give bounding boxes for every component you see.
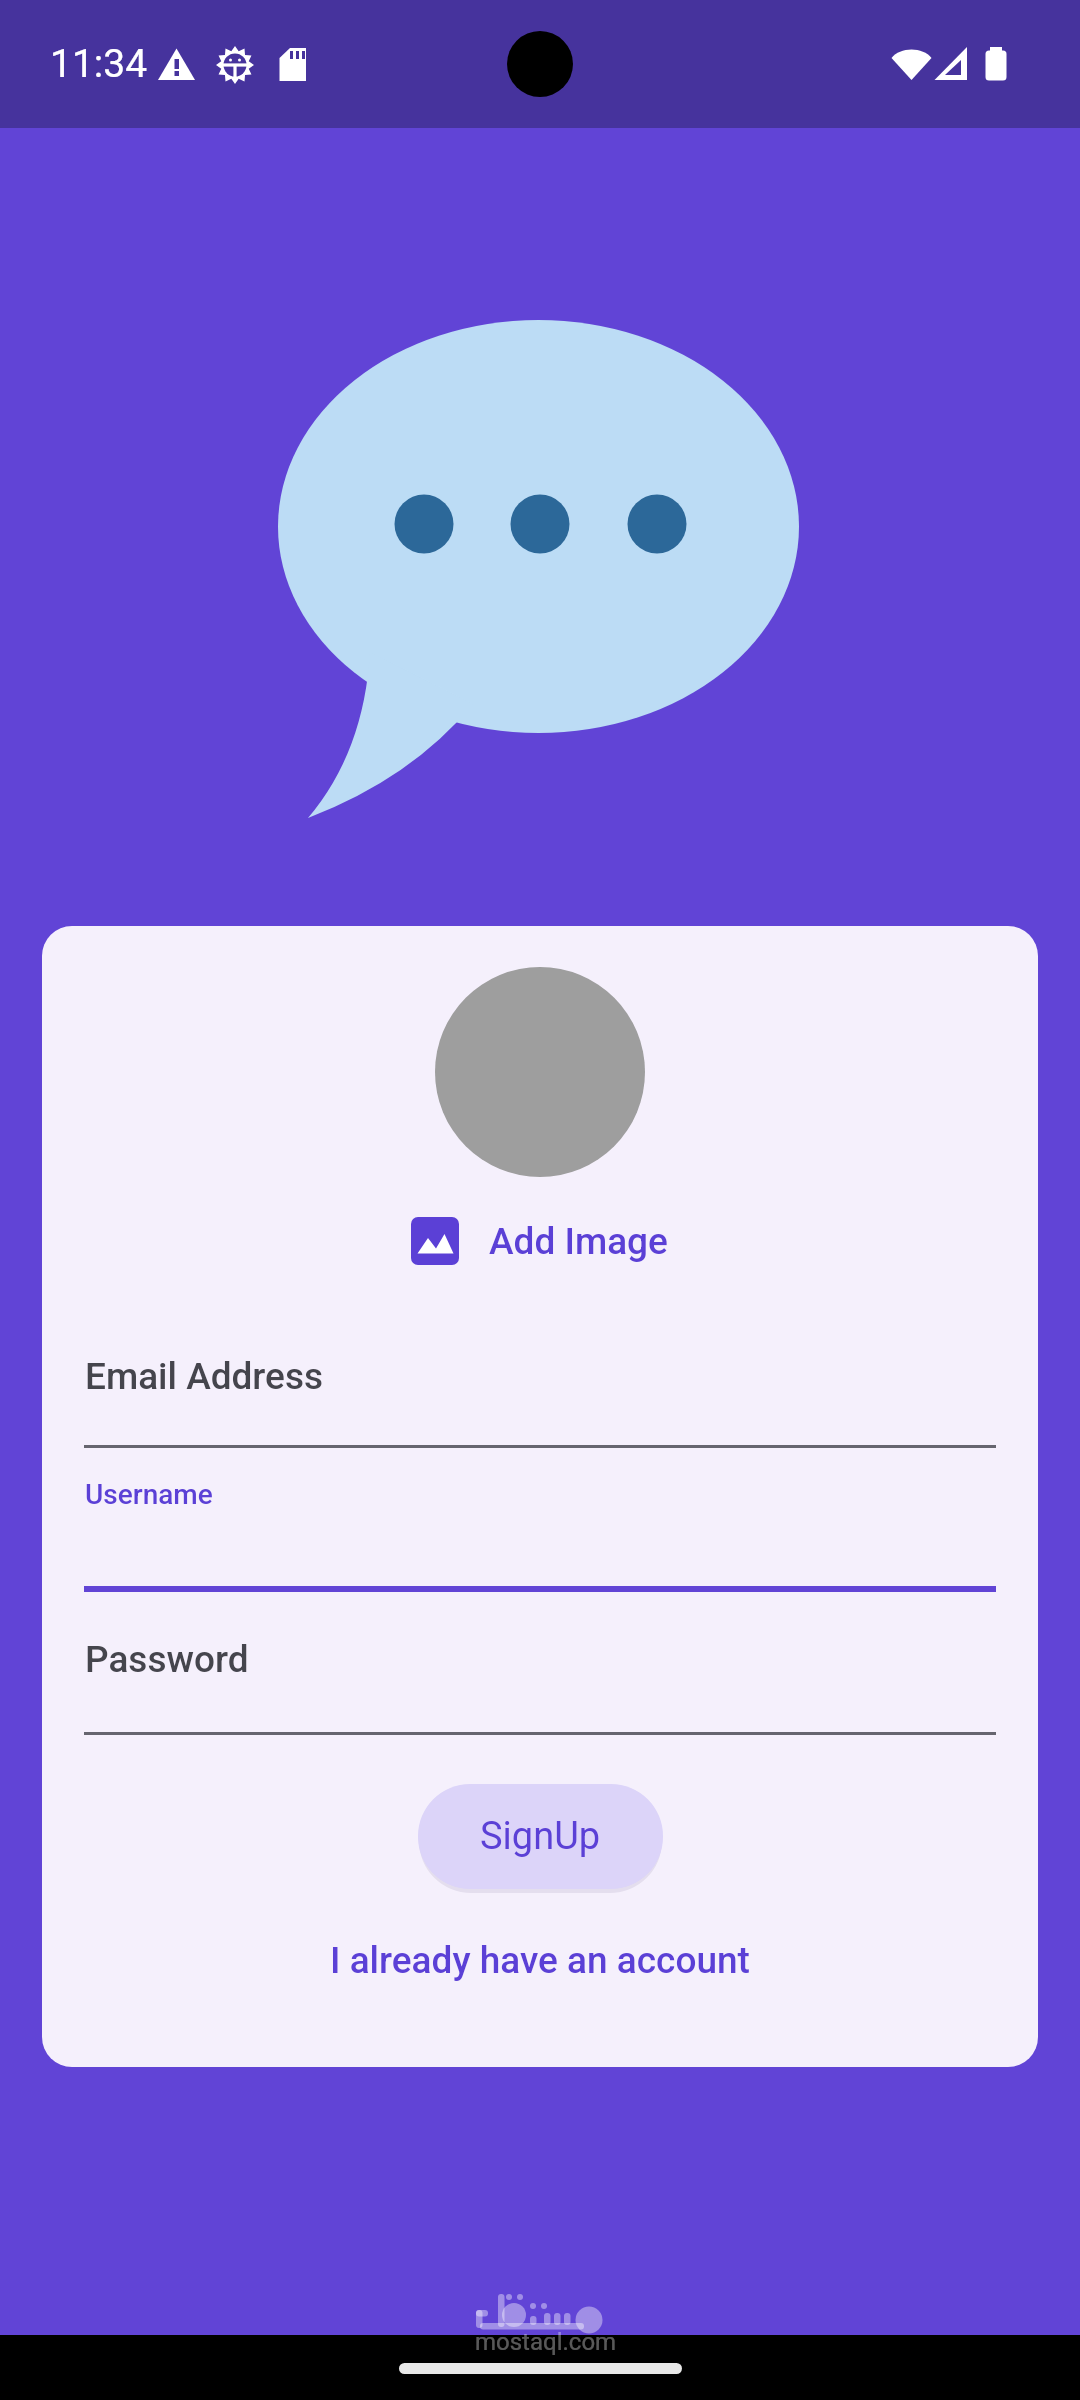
button[interactable]: Profile photo	[435, 967, 645, 1177]
other: Chat app logo	[260, 300, 820, 840]
button[interactable]: SignUp	[418, 1784, 663, 1889]
other: Wi-Fi, signal and battery	[890, 44, 1020, 86]
button[interactable]: I already have an account	[316, 1931, 764, 1990]
staticText: Email Address	[85, 1355, 324, 1398]
staticText: SignUp	[480, 1814, 601, 1859]
staticText: 11:34	[50, 41, 148, 87]
staticText: mostaql.com	[475, 2328, 617, 2356]
other: System notifications	[150, 44, 325, 86]
button[interactable]: Email Address	[42, 1347, 1038, 1448]
staticText: I already have an account	[330, 1939, 750, 1982]
button[interactable]: Home	[399, 2363, 682, 2374]
staticText: Add Image	[489, 1220, 668, 1263]
button[interactable]: Add Image	[411, 1217, 668, 1265]
button[interactable]: Password	[42, 1592, 1038, 1735]
staticText: Password	[85, 1638, 249, 1681]
staticText: Username	[85, 1478, 213, 1511]
button[interactable]: Username	[42, 1448, 1038, 1592]
